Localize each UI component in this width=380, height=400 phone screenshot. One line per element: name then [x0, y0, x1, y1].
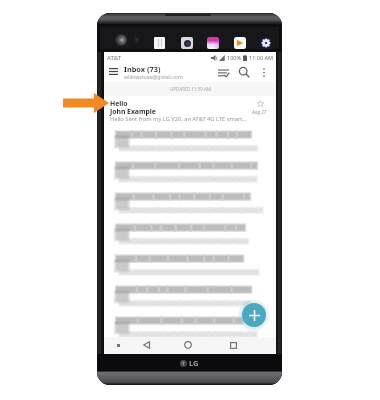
staticText: AT&T: [107, 54, 121, 62]
button[interactable]: Search: [237, 65, 252, 80]
button[interactable]: [104, 220, 276, 251]
button[interactable]: Select all: [216, 65, 231, 80]
button[interactable]: App shortcut: [206, 36, 219, 49]
button[interactable]: App shortcut: [259, 36, 272, 49]
staticText: 11:00 AM: [249, 54, 273, 61]
button[interactable]: [104, 282, 276, 313]
button[interactable]: Compose new email: [242, 303, 266, 327]
button[interactable]: App shortcut: [233, 36, 246, 49]
button[interactable]: Hello: [104, 96, 276, 127]
staticText: John Example: [110, 107, 156, 116]
button[interactable]: More options: [257, 65, 271, 79]
staticText: UPDATED 11:39 AM: [170, 86, 211, 92]
button[interactable]: Home: [180, 337, 196, 353]
staticText: 100%: [227, 54, 242, 61]
button[interactable]: App shortcut: [180, 36, 193, 49]
staticText: Hello: [110, 99, 128, 108]
button[interactable]: App shortcut: [153, 36, 166, 49]
button[interactable]: [104, 127, 276, 158]
button[interactable]: [104, 251, 276, 282]
button[interactable]: [104, 158, 276, 189]
staticText: LG: [189, 358, 199, 368]
staticText: Aug 27: [252, 109, 267, 115]
button[interactable]: Recent apps: [225, 337, 241, 353]
button[interactable]: [104, 189, 276, 220]
staticText: Inbox (73): [124, 64, 161, 74]
staticText: willowstuaa@gmail.com: [124, 73, 183, 80]
button[interactable]: Back: [138, 337, 154, 353]
button[interactable]: Open navigation menu: [106, 64, 121, 79]
staticText: Hello Sent from my LG V20, an AT&T 4G LT…: [110, 115, 247, 123]
button[interactable]: [104, 313, 276, 344]
